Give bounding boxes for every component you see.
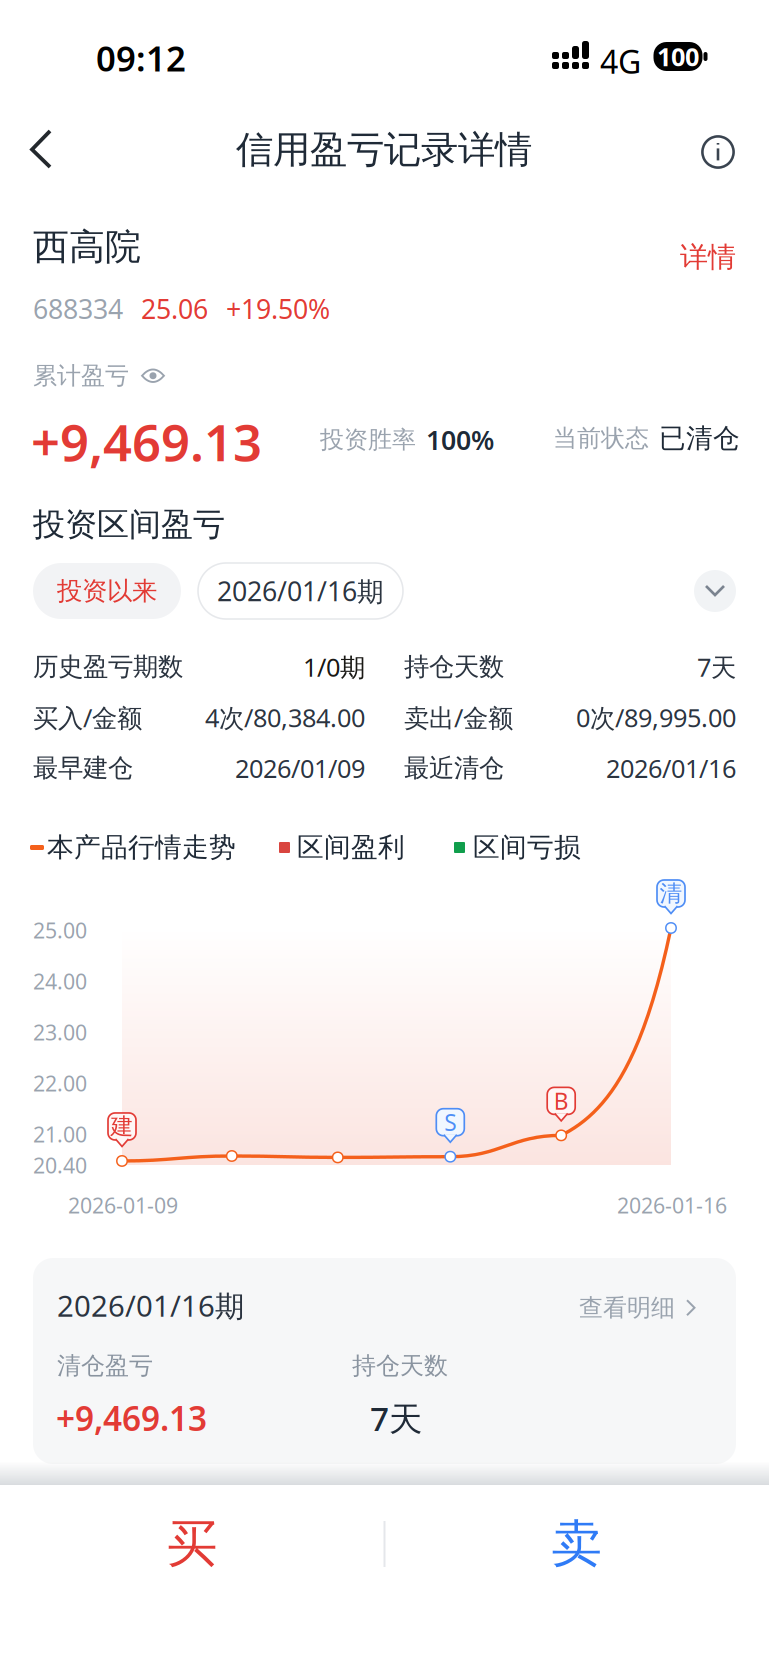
- staticText: +19.50%: [226, 291, 330, 326]
- staticText: +9,469.13: [56, 1396, 207, 1440]
- staticText: 详情: [680, 240, 736, 274]
- staticText: 24.00: [33, 967, 87, 995]
- staticText: 4G: [600, 40, 641, 82]
- staticText: 区间亏损: [473, 831, 581, 864]
- staticText: 投资以来: [57, 575, 157, 606]
- staticText: 2026/01/16: [606, 751, 736, 785]
- staticText: 2026/01/16期: [217, 573, 384, 609]
- staticText: 2026/01/16期: [57, 1286, 244, 1325]
- staticText: 当前状态: [553, 424, 649, 453]
- staticText: 最近清仓: [404, 752, 504, 784]
- staticText: 清仓盈亏: [57, 1351, 153, 1380]
- staticText: 卖出/金额: [404, 701, 513, 734]
- staticText: 7天: [697, 650, 736, 684]
- staticText: 688334: [33, 291, 123, 326]
- staticText: 100%: [426, 422, 494, 457]
- button[interactable]: 2026/01/16期: [198, 563, 403, 619]
- staticText: 持仓天数: [352, 1351, 448, 1380]
- staticText: 25.00: [33, 916, 87, 944]
- staticText: 09:12: [96, 35, 186, 81]
- button[interactable]: 详情: [670, 230, 746, 284]
- staticText: 持仓天数: [404, 651, 504, 682]
- staticText: 投资区间盈亏: [33, 505, 225, 544]
- staticText: 23.00: [33, 1018, 87, 1046]
- staticText: 建: [110, 1113, 133, 1140]
- staticText: 累计盈亏: [33, 361, 129, 390]
- staticText: 100: [657, 40, 699, 73]
- staticText: S: [444, 1107, 456, 1137]
- staticText: 2026/01/09: [235, 751, 365, 785]
- staticText: 清: [659, 880, 682, 907]
- staticText: 信用盈亏记录详情: [236, 127, 532, 173]
- staticText: 0次/89,995.00: [576, 701, 736, 734]
- staticText: 区间盈利: [297, 831, 405, 864]
- staticText: 查看明细: [579, 1293, 675, 1322]
- staticText: 买: [167, 1513, 218, 1575]
- staticText: +9,469.13: [31, 408, 262, 475]
- staticText: 21.00: [33, 1120, 87, 1148]
- button[interactable]: Information: [682, 116, 754, 188]
- staticText: 卖: [551, 1513, 602, 1575]
- staticText: 最早建仓: [33, 752, 133, 784]
- staticText: 本产品行情走势: [47, 831, 236, 864]
- staticText: B: [554, 1086, 569, 1116]
- staticText: 已清仓: [659, 422, 740, 455]
- staticText: 2026-01-09: [68, 1191, 178, 1219]
- button[interactable]: 卖: [384, 1485, 769, 1603]
- button[interactable]: 投资以来: [33, 563, 181, 619]
- staticText: 25.06: [141, 291, 208, 326]
- staticText: 2026-01-16: [617, 1191, 727, 1219]
- staticText: 7天: [370, 1396, 422, 1440]
- button[interactable]: 买: [0, 1485, 384, 1603]
- staticText: 22.00: [33, 1069, 87, 1097]
- button[interactable]: Back: [10, 113, 72, 185]
- staticText: 西高院: [33, 225, 141, 269]
- staticText: 历史盈亏期数: [33, 651, 183, 682]
- staticText: 4次/80,384.00: [205, 701, 365, 734]
- staticText: 投资胜率: [320, 425, 416, 454]
- button[interactable]: 查看明细: [571, 1285, 705, 1330]
- button[interactable]: Expand periods: [694, 570, 736, 612]
- staticText: 1/0期: [303, 650, 365, 684]
- staticText: 买入/金额: [33, 701, 142, 734]
- staticText: 20.40: [33, 1151, 87, 1179]
